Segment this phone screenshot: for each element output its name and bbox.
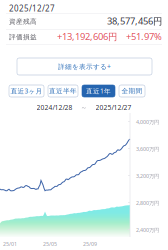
staticText: +51.97% bbox=[126, 30, 162, 43]
button[interactable]: 直近3ヶ月 bbox=[9, 85, 44, 97]
staticText: 25/01 bbox=[3, 240, 17, 248]
staticText: 2024/12/28 bbox=[36, 103, 72, 112]
staticText: 3,600万円 bbox=[136, 145, 159, 153]
staticText: 全期間 bbox=[121, 87, 142, 95]
staticText: 2,800万円 bbox=[136, 199, 159, 207]
staticText: 2025/12/27 bbox=[95, 103, 131, 112]
button[interactable]: 直近1年 bbox=[82, 85, 115, 97]
staticText: 直近半年 bbox=[49, 87, 77, 95]
staticText: 直近3ヶ月 bbox=[10, 87, 42, 95]
staticText: 4,000万円 bbox=[136, 118, 159, 126]
staticText: +13,192,606円 bbox=[57, 30, 117, 43]
staticText: 25/09 bbox=[83, 240, 97, 248]
staticText: 38,577,456円 bbox=[107, 15, 162, 27]
staticText: 詳細を表示する+ bbox=[58, 62, 111, 71]
button[interactable]: 詳細を表示する+ bbox=[17, 58, 152, 75]
staticText: 直近1年 bbox=[86, 87, 111, 95]
staticText: 資産残高 bbox=[9, 17, 37, 26]
staticText: 25/05 bbox=[43, 240, 57, 248]
staticText: ～ bbox=[72, 103, 95, 112]
staticText: 評価損益 bbox=[9, 33, 37, 41]
staticText: 3,200万円 bbox=[136, 172, 159, 180]
staticText: 2,400万円 bbox=[136, 226, 159, 234]
button[interactable]: 直近半年 bbox=[48, 85, 78, 97]
button[interactable]: 全期間 bbox=[119, 85, 145, 97]
staticText: 2025/12/27 bbox=[9, 3, 55, 14]
